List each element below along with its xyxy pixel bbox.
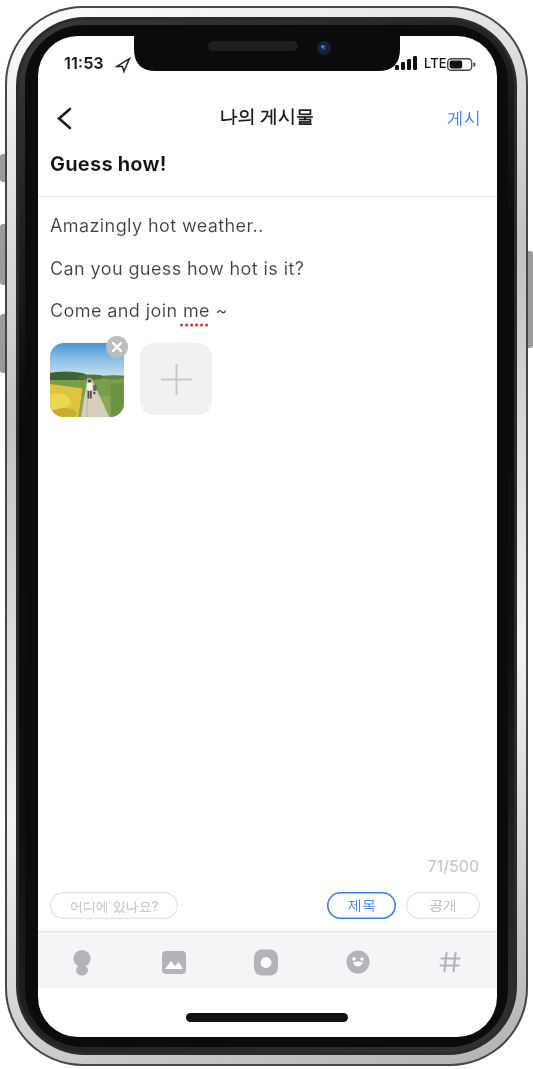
staticText: 11:53 xyxy=(64,53,104,72)
staticText: Can you guess how hot is it? xyxy=(50,258,305,280)
staticText: Come and join me ~ xyxy=(50,300,228,322)
staticText: 제목 xyxy=(348,897,376,915)
staticText: 게시 xyxy=(447,108,481,129)
button[interactable]: 공개 xyxy=(406,892,480,919)
button[interactable] xyxy=(140,343,212,415)
button[interactable] xyxy=(50,343,124,417)
button[interactable] xyxy=(106,336,128,358)
button[interactable]: 게시 xyxy=(443,104,485,133)
staticText: Amazingly hot weather.. xyxy=(50,215,264,237)
staticText: 71/500 xyxy=(0,856,479,875)
staticText: 공개 xyxy=(429,897,457,915)
staticText: LTE xyxy=(424,55,447,71)
staticText: 나의 게시물 xyxy=(0,106,533,129)
staticText: Guess how! xyxy=(50,152,167,176)
button[interactable] xyxy=(344,948,372,976)
button[interactable] xyxy=(436,948,464,976)
staticText: 어디에 있나요? xyxy=(70,898,159,914)
button[interactable]: 제목 xyxy=(327,892,396,919)
button[interactable] xyxy=(160,948,188,976)
button[interactable] xyxy=(68,948,96,976)
button[interactable]: 어디에 있나요? xyxy=(50,892,178,919)
button[interactable] xyxy=(252,948,280,976)
button[interactable] xyxy=(54,106,82,132)
